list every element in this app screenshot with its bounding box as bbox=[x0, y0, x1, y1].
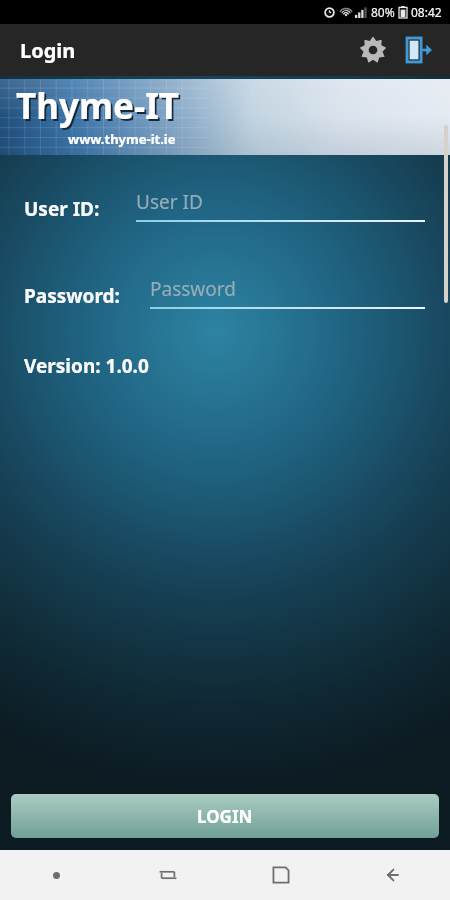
button[interactable]: Log out bbox=[396, 27, 442, 73]
staticText: Login bbox=[20, 37, 76, 64]
button[interactable]: Settings bbox=[350, 27, 396, 73]
button[interactable]: Recents bbox=[224, 850, 337, 900]
staticText: Password bbox=[150, 276, 236, 302]
button[interactable]: User ID bbox=[136, 189, 425, 222]
staticText: www.thyme-it.ie bbox=[68, 130, 176, 148]
staticText: Thyme-IT bbox=[18, 84, 181, 132]
staticText: LOGIN bbox=[197, 805, 253, 828]
button[interactable]: Switch bbox=[112, 850, 224, 900]
button[interactable]: Menu bbox=[0, 850, 112, 900]
button[interactable]: Back bbox=[337, 850, 450, 900]
staticText: User ID bbox=[136, 189, 203, 215]
button[interactable]: Password bbox=[150, 276, 425, 309]
staticText: 08:42 bbox=[411, 4, 442, 20]
staticText: 80% bbox=[371, 4, 395, 20]
staticText: Version: 1.0.0 bbox=[24, 353, 149, 379]
button[interactable]: LOGIN bbox=[11, 794, 439, 838]
staticText: Password: bbox=[24, 283, 150, 309]
staticText: Thyme-IT bbox=[16, 82, 179, 130]
staticText: User ID: bbox=[24, 196, 136, 222]
